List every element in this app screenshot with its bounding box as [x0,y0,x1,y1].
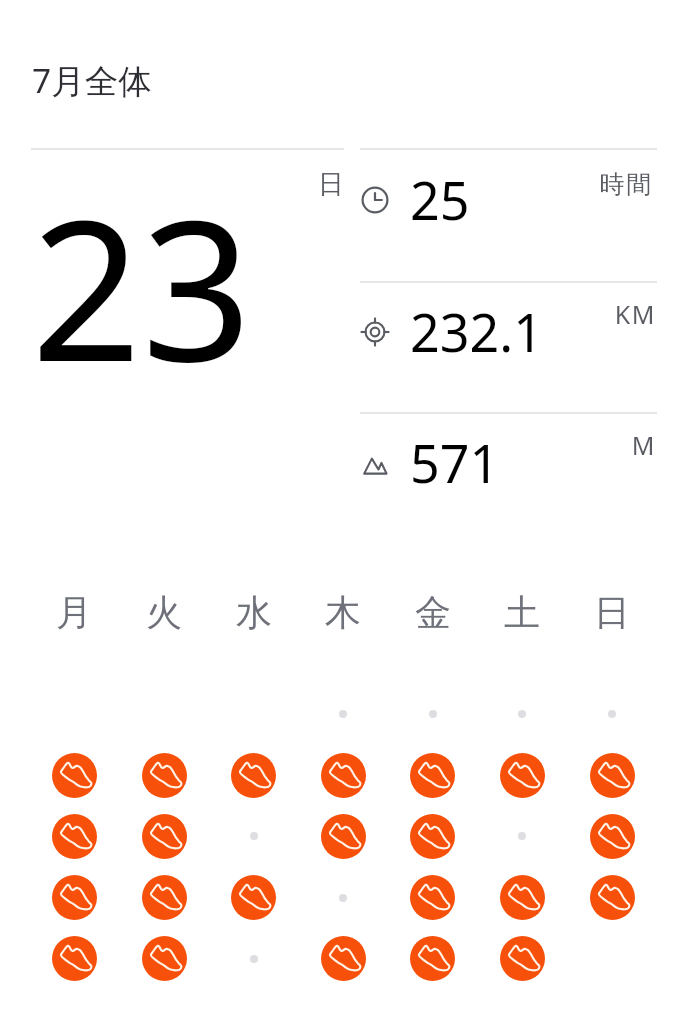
staticText: 金 [415,590,451,635]
staticText: 土 [504,590,540,635]
button[interactable]: Run day [52,875,97,920]
button[interactable]: Run day [500,875,545,920]
button[interactable]: Run day [410,936,455,981]
staticText: 月 [56,590,92,635]
button[interactable]: Run day [321,814,366,859]
staticText: 日 [594,590,630,635]
staticText: 木 [325,590,361,635]
button[interactable]: Run day [52,814,97,859]
button[interactable]: Run day [231,753,276,798]
button[interactable]: Run day [142,936,187,981]
staticText: 時間 [599,169,653,200]
button[interactable]: Run day [142,753,187,798]
button[interactable]: Run day [142,875,187,920]
button[interactable]: Run day [410,875,455,920]
staticText: KM [614,297,656,331]
button[interactable]: Run day [410,814,455,859]
button[interactable]: Run day [52,936,97,981]
staticText: 232.1 [410,296,543,367]
staticText: 水 [236,590,272,635]
button[interactable]: Run day [590,875,635,920]
button[interactable]: Run day [142,814,187,859]
staticText: 7月全体 [32,57,152,103]
button[interactable]: Run day [410,753,455,798]
button[interactable]: Run day [590,753,635,798]
button[interactable]: Run day [321,936,366,981]
staticText: 火 [146,590,182,635]
staticText: 23 [31,155,252,418]
button[interactable]: Run day [590,814,635,859]
button[interactable]: Run day [231,875,276,920]
staticText: M [631,428,656,462]
button[interactable]: Run day [321,753,366,798]
button[interactable]: Run day [500,753,545,798]
staticText: 25 [410,164,470,235]
staticText: 日 [318,168,344,201]
button[interactable]: Run day [52,753,97,798]
button[interactable]: Run day [500,936,545,981]
staticText: 571 [410,427,500,498]
